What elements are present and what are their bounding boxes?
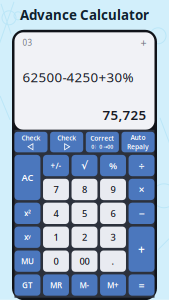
staticText: MR (50, 280, 62, 290)
button[interactable]: xʸ (14, 227, 40, 248)
staticText: +/- (50, 160, 61, 171)
staticText: x² (24, 208, 31, 219)
staticText: 4 (53, 207, 58, 220)
staticText: % (109, 159, 117, 172)
staticText: xʸ (24, 232, 31, 242)
staticText: . (111, 255, 114, 267)
button[interactable]: 00 (71, 250, 97, 272)
button[interactable]: = (129, 274, 154, 296)
staticText: Correct (90, 134, 114, 143)
staticText: M+ (107, 280, 119, 290)
button[interactable]: x² (14, 203, 40, 224)
button[interactable]: 5 (71, 203, 97, 224)
staticText: 62500-4250+30% (22, 68, 133, 86)
button[interactable]: 3 (100, 227, 126, 248)
staticText: Check (21, 133, 40, 142)
button[interactable]: + (129, 227, 154, 272)
staticText: = (138, 278, 144, 292)
button[interactable]: 4 (43, 203, 69, 224)
button[interactable]: . (100, 250, 126, 272)
staticText: 3 (110, 231, 115, 243)
button[interactable]: √ (71, 155, 97, 176)
button[interactable]: Correct (86, 132, 119, 152)
staticText: 03 (22, 37, 32, 48)
staticText: 2 (82, 231, 87, 243)
button[interactable]: Auto (121, 132, 155, 152)
staticText: 1 (53, 231, 58, 243)
button[interactable]: Add entry (138, 38, 148, 48)
button[interactable]: 6 (100, 203, 126, 224)
staticText: 0 (53, 255, 58, 267)
button[interactable]: − (129, 203, 154, 224)
button[interactable]: 9 (100, 179, 126, 200)
button[interactable]: 1 (43, 227, 69, 248)
staticText: GT (22, 280, 33, 290)
staticText: Repaly (127, 142, 149, 151)
staticText: + (140, 35, 146, 50)
button[interactable]: 2 (71, 227, 97, 248)
button[interactable]: MU (14, 250, 40, 272)
staticText: Auto (131, 133, 146, 142)
button[interactable]: M+ (100, 274, 126, 296)
staticText: Check (57, 133, 76, 142)
staticText: 00 (79, 255, 89, 267)
button[interactable]: 7 (43, 179, 69, 200)
staticText: × (138, 182, 144, 197)
button[interactable]: +/- (43, 155, 69, 176)
button[interactable]: AC (14, 155, 40, 200)
staticText: 0〉0 →00 (91, 143, 113, 150)
staticText: ÷ (138, 158, 144, 173)
button[interactable]: M- (71, 274, 97, 296)
staticText: 5 (82, 207, 87, 220)
staticText: + (138, 241, 145, 257)
button[interactable]: 8 (71, 179, 97, 200)
staticText: 8 (82, 183, 87, 196)
staticText: √ (81, 159, 88, 172)
button[interactable]: Check (14, 132, 47, 152)
button[interactable]: × (129, 179, 154, 200)
button[interactable]: MR (43, 274, 69, 296)
staticText: 75,725 (102, 106, 146, 124)
button[interactable]: GT (14, 274, 40, 296)
staticText: − (138, 206, 144, 220)
button[interactable]: ÷ (129, 155, 154, 176)
staticText: 9 (110, 183, 115, 196)
staticText: M- (79, 280, 89, 290)
button[interactable]: % (100, 155, 126, 176)
staticText: Advance Calculator (20, 6, 149, 24)
staticText: MU (21, 256, 34, 266)
button[interactable]: Check (50, 132, 83, 152)
button[interactable]: 0 (43, 250, 69, 272)
staticText: AC (21, 171, 33, 184)
staticText: 6 (110, 207, 115, 220)
staticText: 7 (53, 183, 58, 196)
